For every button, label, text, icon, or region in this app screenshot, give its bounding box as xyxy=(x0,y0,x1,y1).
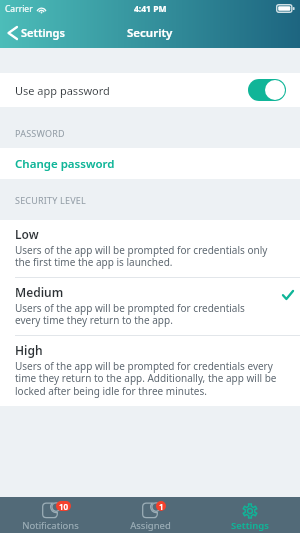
staticText: Medium xyxy=(15,284,64,300)
staticText: Settings xyxy=(231,519,269,532)
button[interactable]: Use app password toggle xyxy=(248,79,286,101)
staticText: Assigned xyxy=(130,519,171,532)
button[interactable]: High xyxy=(0,336,300,406)
staticText: Users of the app will be prompted for cr… xyxy=(15,243,285,269)
button[interactable]: Low xyxy=(0,220,300,277)
staticText: High xyxy=(15,342,43,358)
staticText: Low xyxy=(15,226,39,242)
staticText: Carrier xyxy=(5,3,33,15)
staticText: Settings xyxy=(21,25,65,40)
staticText: 1 xyxy=(159,501,164,511)
button[interactable]: 10 xyxy=(0,497,100,533)
staticText: 4:41 PM xyxy=(134,3,167,15)
button[interactable]: Change password xyxy=(0,148,300,179)
staticText: SECURITY LEVEL xyxy=(15,194,86,206)
other: Settings xyxy=(242,503,258,519)
staticText: Users of the app will be prompted for cr… xyxy=(15,359,285,398)
staticText: 10 xyxy=(59,501,69,511)
button[interactable]: Medium xyxy=(0,278,300,335)
button[interactable]: Use app password xyxy=(0,73,300,107)
button[interactable]: 1 xyxy=(100,497,200,533)
staticText: Notifications xyxy=(22,519,79,532)
other: Battery xyxy=(276,4,295,13)
staticText: Security xyxy=(127,25,173,41)
staticText: Use app password xyxy=(15,83,110,98)
staticText: PASSWORD xyxy=(15,127,65,139)
button[interactable]: Settings xyxy=(0,21,73,44)
button[interactable]: Settings xyxy=(200,497,300,533)
staticText: Change password xyxy=(15,156,115,172)
staticText: Users of the app will be prompted for cr… xyxy=(15,301,261,327)
